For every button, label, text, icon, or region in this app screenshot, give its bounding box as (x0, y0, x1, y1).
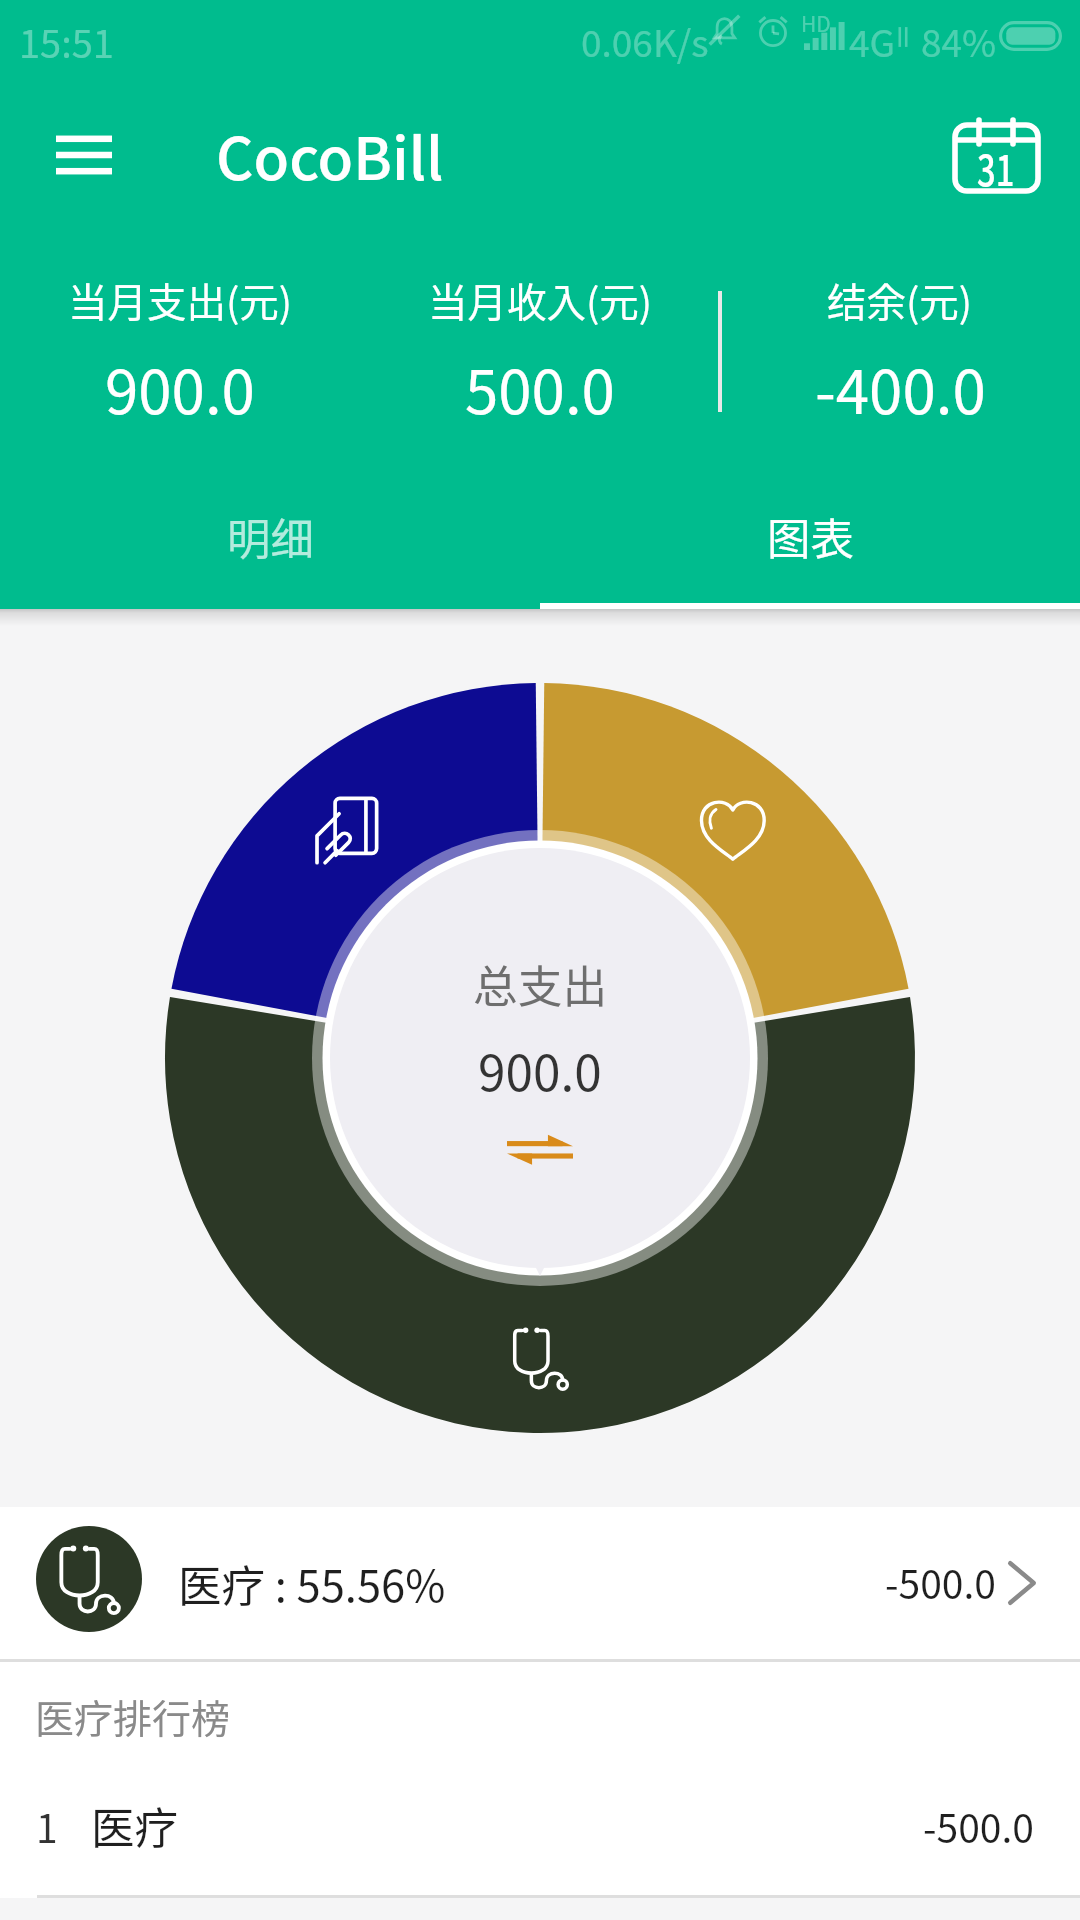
button[interactable]: 图表 (540, 494, 1080, 609)
staticText: 4G (849, 14, 896, 68)
staticText: 医疗排行榜 (35, 1688, 231, 1744)
staticText: 当月收入(元) (428, 271, 653, 328)
staticText: -500.0 (923, 1798, 1034, 1854)
staticText: 900.0 (478, 1034, 602, 1106)
staticText: 结余(元) (827, 271, 973, 328)
button[interactable]: 医疗 : 55.56% (0, 1507, 1080, 1659)
staticText: -500.0 (885, 1554, 996, 1610)
staticText: 医疗 (91, 1794, 178, 1857)
staticText: HD (801, 8, 831, 38)
staticText: 900.0 (105, 344, 255, 431)
staticText: 15:51 (19, 14, 114, 69)
staticText: 1 (36, 1798, 58, 1854)
button[interactable]: 1 (0, 1768, 1080, 1883)
button[interactable]: Calendar (948, 106, 1044, 202)
staticText: 500.0 (465, 344, 615, 431)
button[interactable]: 明细 (0, 494, 540, 609)
staticText: 84% (921, 14, 997, 68)
staticText: CocoBill (216, 113, 444, 197)
staticText: 0.06K/s (581, 14, 709, 68)
staticText: 总支出 (473, 951, 608, 1016)
staticText: -400.0 (815, 344, 986, 431)
staticText: 医疗 : 55.56% (178, 1552, 446, 1615)
button[interactable]: Menu (36, 107, 132, 203)
staticText: 图表 (767, 505, 854, 568)
staticText: 明细 (227, 505, 314, 568)
staticText: 当月支出(元) (68, 271, 293, 328)
staticText: 31 (977, 137, 1014, 198)
